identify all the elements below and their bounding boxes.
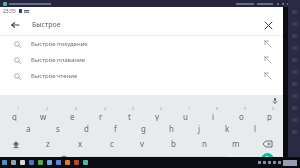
staticText: g bbox=[141, 123, 146, 134]
button[interactable]: 2 bbox=[29, 106, 58, 121]
staticText: 23:35 bbox=[3, 8, 16, 15]
staticText: h bbox=[169, 123, 174, 134]
button[interactable]: Clear bbox=[260, 17, 276, 33]
button[interactable]: c bbox=[96, 136, 127, 151]
button[interactable]: Быстрое плавание bbox=[0, 52, 283, 68]
button[interactable]: x bbox=[64, 136, 96, 151]
staticText: z bbox=[46, 138, 50, 149]
staticText: 5 bbox=[132, 106, 135, 111]
button[interactable]: QWERTY bbox=[78, 156, 227, 163]
button[interactable]: 5 bbox=[115, 106, 143, 121]
staticText: y bbox=[155, 111, 160, 121]
staticText: k bbox=[225, 123, 230, 134]
button[interactable]: Insert suggestion bbox=[261, 37, 275, 51]
staticText: r bbox=[99, 111, 103, 121]
staticText: l bbox=[254, 123, 257, 134]
button[interactable]: n bbox=[189, 136, 220, 151]
staticText: ?123 bbox=[11, 155, 24, 163]
button[interactable]: Insert suggestion bbox=[261, 69, 275, 83]
staticText: p bbox=[267, 111, 272, 121]
staticText: 4 bbox=[104, 106, 107, 111]
button[interactable]: b bbox=[158, 136, 189, 151]
button[interactable]: , bbox=[34, 151, 54, 167]
button[interactable]: Быстрое похудение bbox=[0, 36, 283, 52]
button[interactable]: ?123 bbox=[0, 151, 34, 167]
staticText: n bbox=[202, 138, 207, 149]
staticText: 6 bbox=[160, 106, 163, 111]
button[interactable]: Insert suggestion bbox=[261, 53, 275, 67]
staticText: e bbox=[70, 111, 75, 121]
button[interactable]: 8 bbox=[199, 106, 227, 121]
staticText: Быстрое плавание bbox=[31, 56, 85, 64]
staticText: u bbox=[183, 111, 188, 121]
button[interactable]: m bbox=[220, 136, 251, 151]
button[interactable]: z bbox=[32, 136, 64, 151]
button[interactable]: j bbox=[185, 121, 213, 136]
staticText: 7 bbox=[188, 106, 191, 111]
staticText: j bbox=[198, 123, 201, 134]
staticText: t bbox=[128, 111, 131, 121]
button[interactable]: a bbox=[14, 121, 43, 136]
button[interactable]: Быстрое чтение bbox=[0, 68, 283, 84]
staticText: w bbox=[40, 111, 47, 121]
button[interactable]: l bbox=[241, 121, 269, 136]
staticText: QWERTY bbox=[142, 156, 163, 163]
staticText: c bbox=[110, 138, 114, 149]
staticText: . bbox=[240, 154, 242, 164]
button[interactable]: 1 bbox=[0, 106, 29, 121]
button[interactable]: 3 bbox=[58, 106, 87, 121]
button[interactable]: Back bbox=[7, 17, 23, 33]
staticText: f bbox=[114, 123, 117, 134]
staticText: q bbox=[12, 111, 17, 121]
staticText: b bbox=[171, 138, 176, 149]
button[interactable]: 7 bbox=[171, 106, 199, 121]
button[interactable]: 4 bbox=[87, 106, 115, 121]
staticText: 8 bbox=[216, 106, 219, 111]
staticText: 0 bbox=[272, 106, 275, 111]
button[interactable]: 0 bbox=[255, 106, 283, 121]
staticText: 1 bbox=[17, 106, 20, 111]
button[interactable]: k bbox=[213, 121, 241, 136]
button[interactable]: h bbox=[157, 121, 185, 136]
staticText: Быстрое bbox=[32, 20, 61, 30]
button[interactable]: s bbox=[43, 121, 72, 136]
staticText: d bbox=[84, 123, 89, 134]
button[interactable]: Voice input bbox=[269, 95, 280, 106]
staticText: a bbox=[26, 123, 31, 134]
staticText: 9 bbox=[244, 106, 247, 111]
staticText: Быстрое похудение bbox=[31, 40, 88, 48]
button[interactable]: Emoji bbox=[54, 151, 74, 167]
button[interactable]: v bbox=[127, 136, 158, 151]
staticText: x bbox=[78, 138, 83, 149]
button[interactable]: f bbox=[101, 121, 129, 136]
button[interactable]: . bbox=[231, 151, 251, 167]
staticText: Быстрое чтение bbox=[31, 72, 78, 80]
button[interactable]: Search bbox=[261, 153, 274, 166]
staticText: s bbox=[56, 123, 60, 134]
button[interactable]: Shift bbox=[0, 136, 32, 151]
button[interactable]: 9 bbox=[227, 106, 255, 121]
button[interactable]: 6 bbox=[143, 106, 171, 121]
staticText: v bbox=[140, 138, 145, 149]
staticText: 2 bbox=[46, 106, 49, 111]
button[interactable]: d bbox=[72, 121, 101, 136]
staticText: 3 bbox=[75, 106, 78, 111]
staticText: o bbox=[239, 111, 244, 121]
button[interactable]: Backspace bbox=[251, 136, 283, 151]
staticText: i bbox=[212, 111, 215, 121]
staticText: , bbox=[43, 154, 45, 164]
staticText: m bbox=[232, 138, 240, 149]
button[interactable]: g bbox=[129, 121, 157, 136]
